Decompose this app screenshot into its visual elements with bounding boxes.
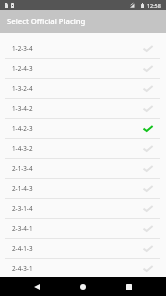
staticText: 1-4-2-3 xyxy=(12,124,33,133)
button[interactable]: 2-3-1-4 xyxy=(0,198,166,218)
staticText: 1-3-4-2 xyxy=(12,104,33,113)
staticText: 1-2-3-4 xyxy=(12,44,33,53)
staticText: 2-1-4-3 xyxy=(12,184,33,193)
button[interactable]: Select Official Placing xyxy=(0,10,166,33)
button[interactable]: Recents xyxy=(106,277,152,296)
staticText: 2-4-1-3 xyxy=(12,244,33,253)
button[interactable]: 1-4-3-2 xyxy=(0,138,166,158)
button[interactable]: 2-1-3-4 xyxy=(0,158,166,178)
staticText: 12:58 xyxy=(147,2,161,9)
staticText: 2-3-4-1 xyxy=(12,224,33,233)
button[interactable]: 2-4-1-3 xyxy=(0,238,166,258)
staticText: 1-4-3-2 xyxy=(12,144,33,153)
button[interactable]: 2-3-4-1 xyxy=(0,218,166,238)
staticText: 1-2-4-3 xyxy=(12,64,33,73)
button[interactable]: 2-4-3-1 xyxy=(0,258,166,277)
staticText: Select Official Placing xyxy=(7,16,86,26)
button[interactable]: 1-3-2-4 xyxy=(0,78,166,98)
button[interactable]: 1-4-2-3 xyxy=(0,118,166,138)
button[interactable]: Home xyxy=(60,277,106,296)
staticText: 2-3-1-4 xyxy=(12,204,33,213)
staticText: 2-1-3-4 xyxy=(12,164,33,173)
staticText: 2-4-3-1 xyxy=(12,264,33,273)
button[interactable]: 1-2-3-4 xyxy=(0,38,166,58)
button[interactable]: 1-3-4-2 xyxy=(0,98,166,118)
button[interactable]: 2-1-4-3 xyxy=(0,178,166,198)
button[interactable]: 1-2-4-3 xyxy=(0,58,166,78)
button[interactable]: Back xyxy=(14,277,60,296)
staticText: 1-3-2-4 xyxy=(12,84,33,93)
